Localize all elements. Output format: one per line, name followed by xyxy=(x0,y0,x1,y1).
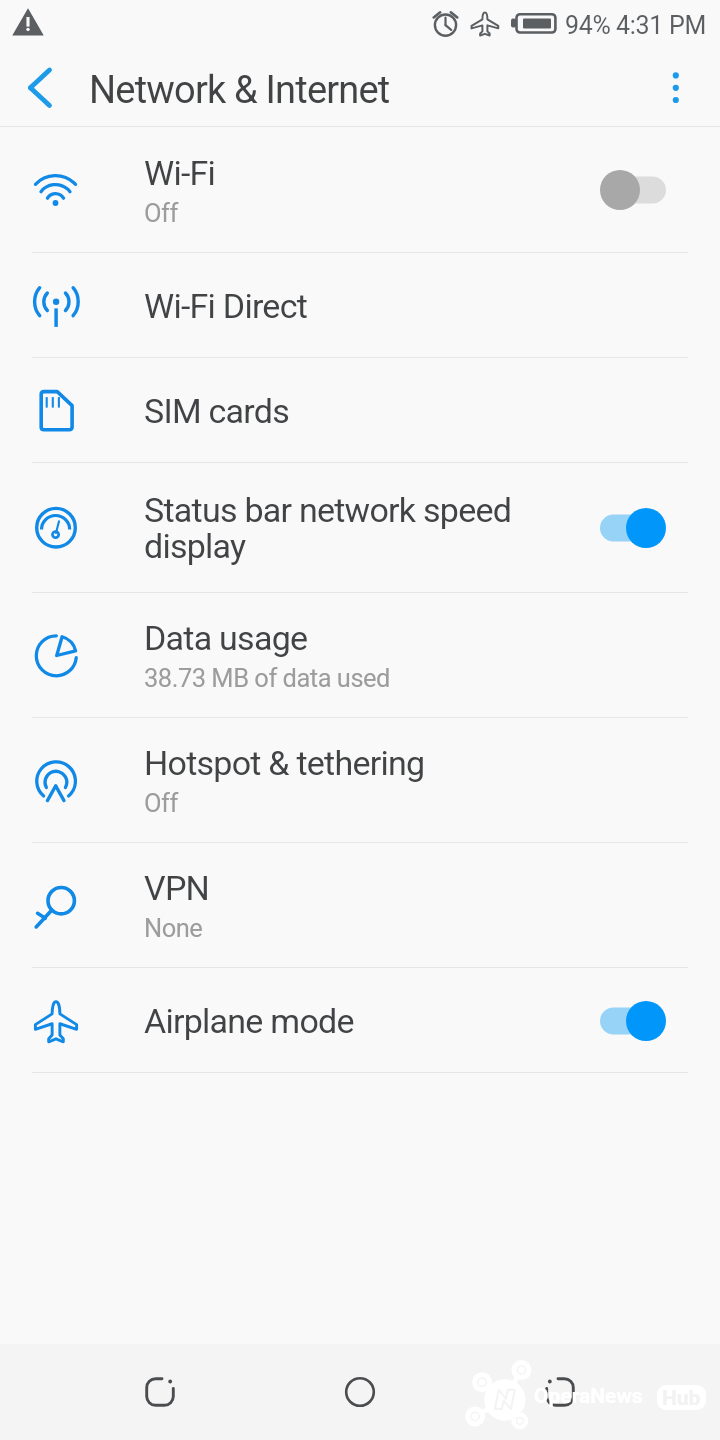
button[interactable]: Recents xyxy=(510,1344,610,1440)
staticText: 38.73 MB of data used xyxy=(144,663,390,693)
staticText: 4:31 PM xyxy=(616,11,706,40)
button[interactable]: VPN xyxy=(0,843,720,968)
button[interactable]: Toggle Wi-Fi xyxy=(604,127,720,253)
staticText: Hub xyxy=(662,1386,701,1410)
button[interactable]: SIM cards xyxy=(0,358,720,463)
staticText: Network & Internet xyxy=(89,68,390,113)
staticText: Off xyxy=(144,788,178,818)
staticText: Wi-Fi Direct xyxy=(144,286,308,326)
button[interactable]: Wi-Fi xyxy=(0,127,720,253)
button[interactable]: Back xyxy=(4,55,76,125)
button[interactable]: Home xyxy=(310,1344,410,1440)
button[interactable]: More options xyxy=(648,55,720,125)
staticText: None xyxy=(144,913,203,943)
staticText: OperaNews xyxy=(534,1384,643,1409)
button[interactable]: Back xyxy=(110,1344,210,1440)
staticText: Off xyxy=(144,198,178,228)
button[interactable]: Wi-Fi Direct xyxy=(0,253,720,358)
staticText: SIM cards xyxy=(144,391,290,431)
button[interactable]: Toggle Status bar network speed display xyxy=(604,463,720,593)
staticText: VPN xyxy=(144,868,210,908)
staticText: 94% xyxy=(565,11,611,40)
staticText: Wi-Fi xyxy=(144,153,216,193)
staticText: Data usage xyxy=(144,618,308,658)
staticText: Airplane mode xyxy=(144,1001,354,1041)
button[interactable]: Status bar network speed display xyxy=(0,463,720,593)
button[interactable]: Hotspot & tethering xyxy=(0,718,720,843)
staticText: Hotspot & tethering xyxy=(144,743,425,783)
button[interactable]: Toggle Airplane mode xyxy=(604,968,720,1073)
staticText: Status bar network speed display xyxy=(144,490,572,566)
button[interactable]: Data usage xyxy=(0,593,720,718)
button[interactable]: Airplane mode xyxy=(0,968,720,1073)
